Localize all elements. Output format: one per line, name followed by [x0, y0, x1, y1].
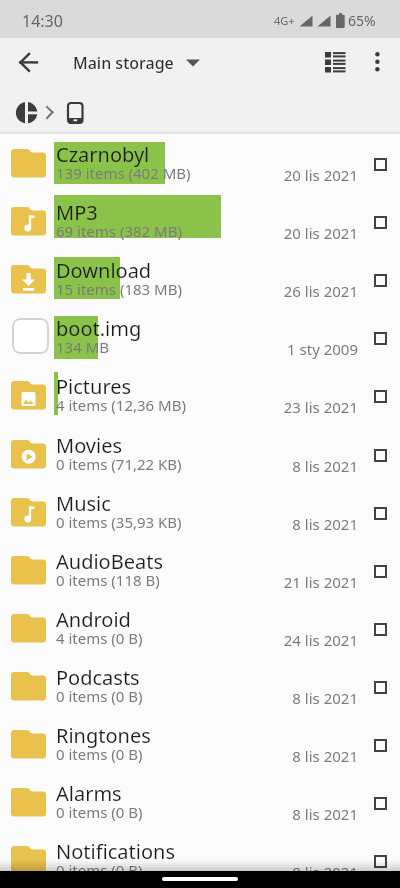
staticText: 20 lis 2021: [237, 223, 358, 243]
staticText: Music: [56, 490, 111, 517]
button[interactable]: [374, 216, 387, 229]
button[interactable]: [318, 46, 352, 78]
button[interactable]: Pictures: [0, 365, 400, 423]
button[interactable]: Ringtones: [0, 714, 400, 772]
button[interactable]: boot.img: [0, 307, 400, 365]
staticText: 24 lis 2021: [237, 630, 358, 650]
staticText: Notifications: [56, 838, 175, 865]
staticText: 14:30: [22, 10, 63, 32]
button[interactable]: [374, 507, 387, 520]
staticText: 21 lis 2021: [237, 572, 358, 592]
staticText: Pictures: [56, 373, 132, 400]
staticText: 15 items (183 MB): [56, 279, 182, 299]
staticText: boot.img: [56, 315, 142, 342]
staticText: 0 items (0 B): [56, 744, 143, 764]
staticText: Main storage: [73, 52, 174, 74]
staticText: 134 MB: [56, 337, 109, 357]
staticText: 69 items (382 MB): [56, 221, 182, 241]
staticText: Podcasts: [56, 664, 140, 691]
button[interactable]: [374, 449, 387, 462]
button[interactable]: Android: [0, 598, 400, 656]
button[interactable]: Notifications: [0, 830, 400, 888]
button[interactable]: [374, 739, 387, 752]
button[interactable]: [374, 681, 387, 694]
staticText: 8 lis 2021: [237, 456, 358, 476]
staticText: 8 lis 2021: [237, 746, 358, 766]
staticText: Download: [56, 257, 152, 284]
staticText: 8 lis 2021: [237, 862, 358, 882]
staticText: 0 items (0 B): [56, 686, 143, 706]
staticText: 0 items (71,22 KB): [56, 454, 182, 474]
staticText: 139 items (402 MB): [56, 163, 191, 183]
staticText: 8 lis 2021: [237, 514, 358, 534]
staticText: 23 lis 2021: [237, 397, 358, 417]
staticText: 20 lis 2021: [237, 165, 358, 185]
staticText: MP3: [56, 199, 98, 226]
staticText: 26 lis 2021: [237, 281, 358, 301]
button[interactable]: [374, 390, 387, 403]
button[interactable]: Movies: [0, 424, 400, 482]
staticText: Movies: [56, 432, 123, 459]
button[interactable]: [374, 797, 387, 810]
staticText: 0 items (0 B): [56, 860, 143, 880]
staticText: 4 items (0 B): [56, 628, 143, 648]
button[interactable]: Alarms: [0, 772, 400, 830]
button[interactable]: Music: [0, 482, 400, 540]
button[interactable]: Download: [0, 249, 400, 307]
staticText: Czarnobyl: [56, 141, 150, 168]
staticText: Ringtones: [56, 722, 151, 749]
button[interactable]: Main storage: [73, 52, 200, 74]
button[interactable]: [12, 50, 46, 76]
staticText: 8 lis 2021: [237, 688, 358, 708]
button[interactable]: [365, 46, 391, 78]
button[interactable]: AudioBeats: [0, 540, 400, 598]
button[interactable]: [374, 332, 387, 345]
button[interactable]: [10, 96, 44, 130]
button[interactable]: Czarnobyl: [0, 133, 400, 191]
button[interactable]: [374, 158, 387, 171]
staticText: 0 items (0 B): [56, 802, 143, 822]
button[interactable]: [374, 274, 387, 287]
staticText: 4G+: [274, 13, 295, 28]
staticText: Android: [56, 606, 131, 633]
button[interactable]: MP3: [0, 191, 400, 249]
staticText: AudioBeats: [56, 548, 163, 575]
staticText: 8 lis 2021: [237, 804, 358, 824]
staticText: 65%: [348, 11, 376, 30]
button[interactable]: [374, 565, 387, 578]
staticText: 0 items (118 B): [56, 570, 160, 590]
staticText: 4 items (12,36 MB): [56, 395, 186, 415]
button[interactable]: [62, 98, 89, 128]
staticText: 0 items (35,93 KB): [56, 512, 182, 532]
staticText: Alarms: [56, 780, 122, 807]
button[interactable]: [374, 623, 387, 636]
button[interactable]: Podcasts: [0, 656, 400, 714]
button[interactable]: [374, 855, 387, 868]
staticText: 1 sty 2009: [237, 339, 358, 359]
